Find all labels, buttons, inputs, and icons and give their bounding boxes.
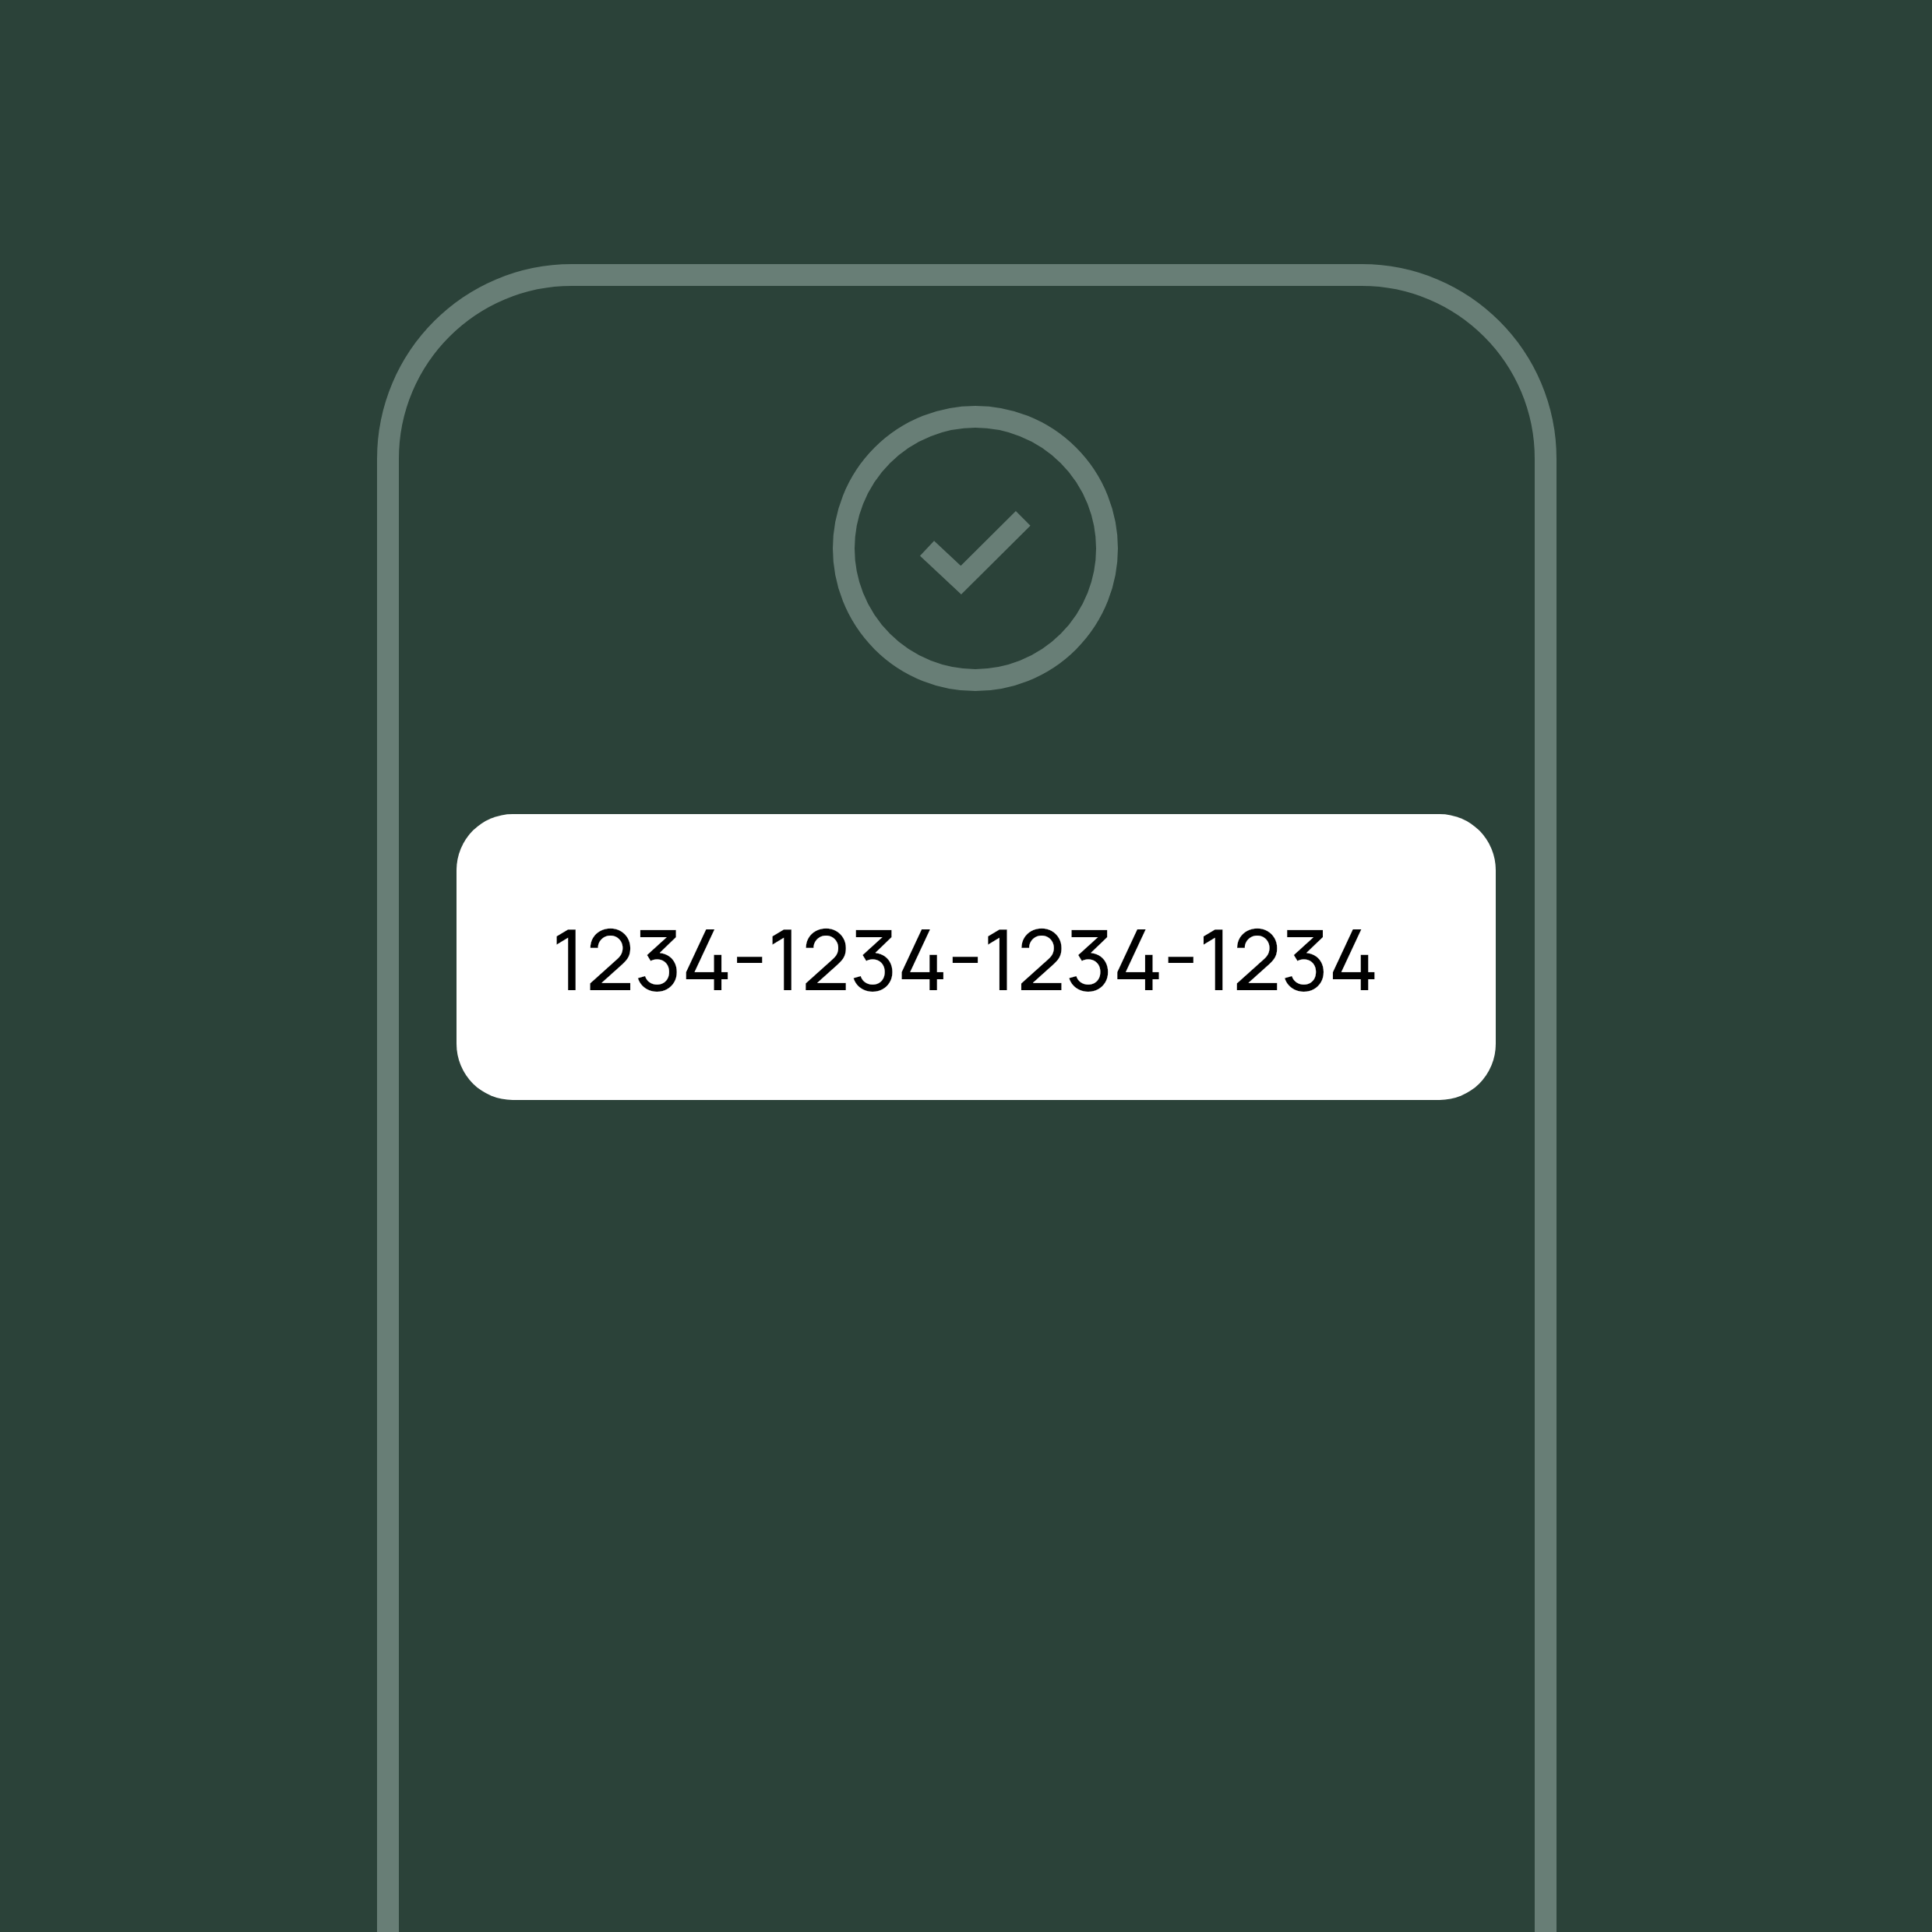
button[interactable]: Card number 1234-1234-1234-1234: [457, 814, 1496, 1100]
staticText: 1234-1234-1234-1234: [552, 901, 1379, 1016]
